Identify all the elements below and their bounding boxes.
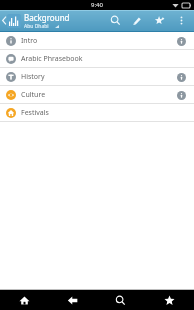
button[interactable]: Search: [96, 290, 145, 310]
button[interactable]: History: [0, 68, 194, 85]
button[interactable]: Back: [48, 290, 96, 310]
staticText: 9:40: [91, 1, 103, 9]
staticText: Festivals: [21, 108, 174, 118]
button[interactable]: Home: [0, 290, 48, 310]
button[interactable]: Bookmarks: [145, 290, 194, 310]
button[interactable]: Intro: [0, 32, 194, 49]
button[interactable]: More options: [170, 10, 192, 31]
button[interactable]: Favorites: [148, 10, 170, 31]
button[interactable]: Culture: [0, 86, 194, 103]
button[interactable]: Navigate up: [0, 10, 104, 31]
staticText: Culture: [21, 90, 174, 100]
staticText: History: [21, 72, 174, 82]
button[interactable]: More information about History: [174, 70, 188, 84]
staticText: Abu Dhabi: [24, 23, 49, 30]
button[interactable]: Edit: [126, 10, 148, 31]
staticText: Background: [24, 12, 70, 23]
button[interactable]: Search: [104, 10, 126, 31]
staticText: Arabic Phrasebook: [21, 54, 174, 64]
button[interactable]: Festivals: [0, 104, 194, 121]
button[interactable]: More information about Intro: [174, 34, 188, 48]
button[interactable]: More information about Culture: [174, 88, 188, 102]
button[interactable]: Arabic Phrasebook: [0, 50, 194, 67]
staticText: Intro: [21, 36, 174, 46]
other: Navigate up: [2, 16, 6, 25]
